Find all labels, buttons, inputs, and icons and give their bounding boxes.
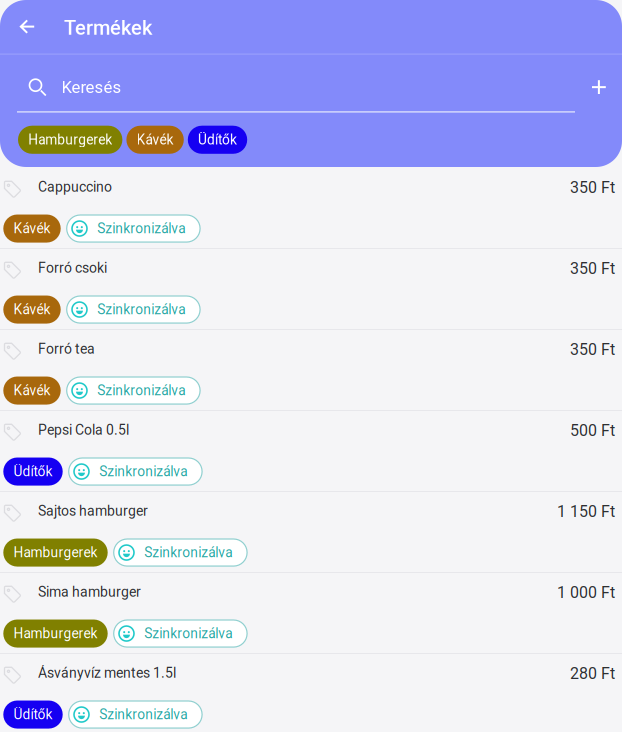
staticText: Szinkronizálva bbox=[97, 382, 185, 399]
staticText: Szinkronizálva bbox=[97, 301, 185, 318]
staticText: Kávék bbox=[13, 301, 50, 318]
staticText: Hamburgerek bbox=[13, 544, 97, 561]
staticText: 500 Ft bbox=[570, 421, 615, 440]
staticText: 350 Ft bbox=[570, 178, 615, 197]
staticText: Kávék bbox=[137, 132, 174, 148]
button[interactable]: Sajtos hamburger bbox=[0, 492, 622, 572]
staticText: Kávék bbox=[13, 220, 50, 237]
staticText: Hamburgerek bbox=[13, 625, 97, 642]
button[interactable]: Ásványvíz mentes 1.5l bbox=[0, 654, 622, 732]
staticText: Szinkronizálva bbox=[99, 463, 187, 480]
staticText: Forró tea bbox=[38, 341, 95, 357]
staticText: 1 000 Ft bbox=[557, 583, 615, 602]
staticText: Üdítők bbox=[13, 463, 52, 480]
button[interactable]: Hamburgerek bbox=[18, 126, 122, 154]
button[interactable]: Forró tea bbox=[0, 330, 622, 410]
button[interactable]: Add product bbox=[576, 64, 620, 110]
staticText: Szinkronizálva bbox=[144, 544, 232, 561]
staticText: Szinkronizálva bbox=[144, 625, 232, 642]
button[interactable]: Back bbox=[0, 0, 48, 53]
staticText: 350 Ft bbox=[570, 340, 615, 359]
staticText: Sima hamburger bbox=[38, 584, 141, 600]
staticText: 1 150 Ft bbox=[557, 502, 615, 521]
button[interactable]: Pepsi Cola 0.5l bbox=[0, 411, 622, 491]
staticText: Hamburgerek bbox=[28, 132, 112, 148]
button[interactable]: Kávék bbox=[126, 126, 184, 154]
staticText: Termékek bbox=[64, 16, 152, 40]
staticText: Pepsi Cola 0.5l bbox=[38, 422, 129, 438]
staticText: Cappuccino bbox=[38, 179, 112, 195]
button[interactable]: Cappuccino bbox=[0, 168, 622, 248]
staticText: Szinkronizálva bbox=[97, 220, 185, 237]
staticText: Kávék bbox=[13, 382, 50, 399]
button[interactable]: Sima hamburger bbox=[0, 573, 622, 653]
staticText: Üdítők bbox=[13, 706, 52, 723]
button[interactable]: Üdítők bbox=[188, 126, 247, 154]
staticText: 350 Ft bbox=[570, 259, 615, 278]
staticText: Forró csoki bbox=[38, 260, 107, 276]
staticText: 280 Ft bbox=[570, 664, 615, 683]
staticText: Ásványvíz mentes 1.5l bbox=[38, 665, 176, 681]
staticText: Szinkronizálva bbox=[99, 706, 187, 723]
staticText: Sajtos hamburger bbox=[38, 503, 148, 519]
staticText: Keresés bbox=[61, 78, 121, 97]
staticText: Üdítők bbox=[198, 132, 237, 148]
button[interactable]: Forró csoki bbox=[0, 249, 622, 329]
